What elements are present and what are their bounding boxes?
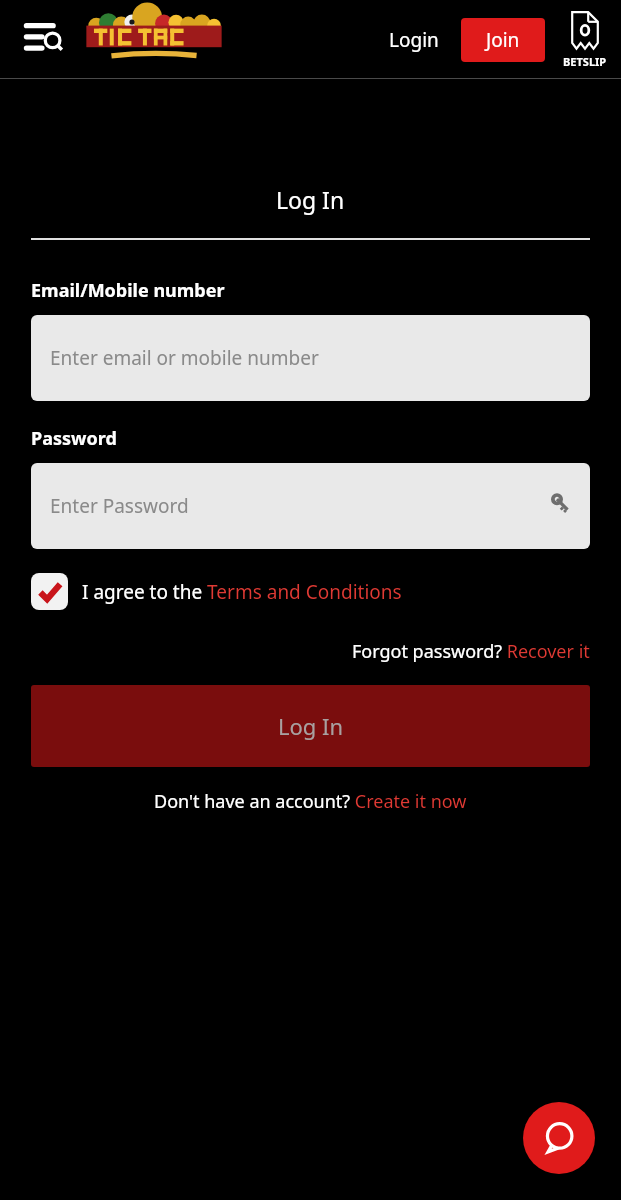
button[interactable]: Open chat support — [523, 1102, 595, 1174]
staticText: Email/Mobile number — [31, 278, 225, 303]
button[interactable]: Forgot password? Recover it — [352, 639, 590, 664]
staticText: I agree to the Terms and Conditions — [82, 579, 402, 605]
staticText: Join — [486, 27, 520, 53]
button[interactable]: Login — [377, 17, 451, 63]
button[interactable]: Betslip, 0 items — [559, 11, 611, 69]
button[interactable]: Join — [461, 18, 545, 62]
staticText: Log In — [278, 711, 344, 741]
button[interactable]: Enter email or mobile number — [31, 315, 590, 401]
staticText: Forgot password? Recover it — [352, 639, 590, 664]
staticText: Password — [31, 426, 117, 451]
button[interactable]: Tic Tac Sports Betting home — [78, 4, 230, 76]
staticText: BETSLIP — [563, 54, 607, 69]
staticText: Enter Password — [50, 493, 189, 519]
staticText: Enter email or mobile number — [50, 345, 319, 371]
staticText: Login — [389, 27, 439, 53]
button[interactable]: Agree to terms, checked — [31, 573, 68, 610]
button[interactable]: Agree to terms, checked — [31, 573, 590, 610]
staticText: Log In — [276, 184, 345, 215]
button[interactable]: Show password — [542, 491, 572, 521]
staticText: Don't have an account? Create it now — [154, 789, 467, 814]
button[interactable]: Enter Password — [31, 463, 590, 549]
button[interactable]: Menu and search — [14, 15, 72, 65]
button[interactable]: Log In — [31, 685, 590, 767]
button[interactable]: Don't have an account? Create it now — [154, 789, 467, 814]
